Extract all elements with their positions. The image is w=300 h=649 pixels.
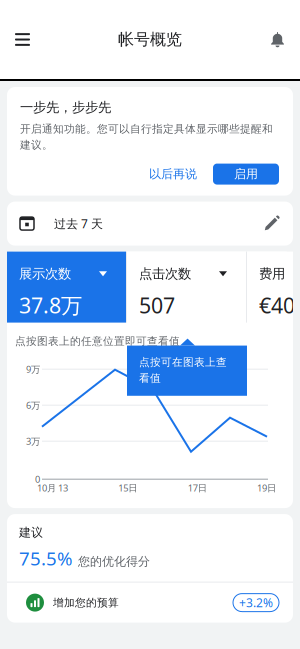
staticText: 点击次数 [139, 266, 191, 282]
staticText: 3万 [26, 435, 40, 447]
staticText: 启用 [234, 167, 258, 181]
button[interactable]: Menu [0, 13, 45, 65]
staticText: 费用 [259, 266, 285, 282]
staticText: 37.8万 [19, 291, 82, 319]
button[interactable]: 增加您的预算 [7, 583, 293, 623]
button[interactable]: 点击次数 [127, 252, 246, 323]
staticText: 15日 [118, 482, 137, 494]
staticText: 17日 [188, 482, 207, 494]
button[interactable]: 以后再说 [141, 164, 205, 185]
button[interactable]: 费用 [247, 252, 300, 323]
staticText: 9万 [26, 363, 40, 375]
button[interactable]: 启用 [213, 164, 279, 185]
button[interactable]: Notifications [255, 13, 300, 65]
staticText: 点按图表上的任意位置即可查看值 [15, 335, 180, 348]
staticText: 过去 7 天 [54, 216, 103, 231]
button[interactable]: 展示次数 [7, 252, 126, 323]
staticText: 开启通知功能。您可以自行指定具体显示哪些提醒和 [20, 122, 273, 135]
button[interactable]: 过去 7 天 [7, 202, 293, 246]
staticText: 0 [35, 473, 40, 485]
staticText: 6万 [26, 399, 40, 411]
staticText: €409 [259, 291, 300, 319]
staticText: 19日 [257, 482, 276, 494]
staticText: 增加您的预算 [53, 596, 119, 609]
staticText: 展示次数 [19, 266, 71, 282]
staticText: 10月 13 [37, 482, 68, 494]
staticText: 507 [139, 291, 175, 319]
staticText: +3.2% [239, 595, 273, 610]
staticText: 点按可在图表上查 [139, 356, 227, 369]
staticText: 建议。 [20, 138, 53, 152]
staticText: 建议 [19, 525, 43, 540]
staticText: 您的优化得分 [78, 554, 150, 569]
staticText: 75.5% [19, 546, 73, 571]
staticText: 一步先，步步先 [20, 99, 111, 115]
staticText: 看值 [139, 372, 161, 385]
staticText: 以后再说 [149, 167, 197, 181]
staticText: 帐号概览 [118, 30, 182, 49]
